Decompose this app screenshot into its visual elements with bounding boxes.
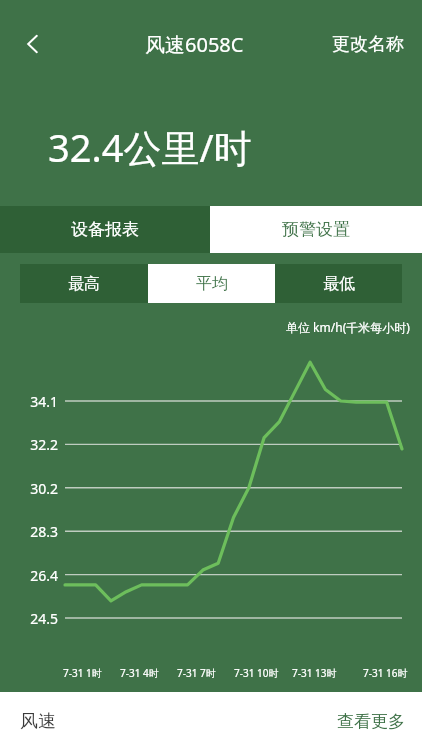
staticText: 7-31 7时 xyxy=(177,666,216,680)
staticText: 32.4公里/时 xyxy=(48,121,252,173)
staticText: 28.3 xyxy=(0,522,58,541)
staticText: 7-31 16时 xyxy=(363,666,408,680)
button[interactable]: 预警设置 xyxy=(210,206,422,253)
staticText: 7-31 10时 xyxy=(234,666,279,680)
staticText: 34.1 xyxy=(0,392,58,411)
button[interactable]: 最高 xyxy=(20,264,148,303)
staticText: 风速6058C xyxy=(145,31,244,58)
button[interactable]: 查看更多 xyxy=(320,701,422,742)
button[interactable]: 更改名称 xyxy=(326,25,410,64)
staticText: 7-31 4时 xyxy=(120,666,159,680)
button[interactable]: 平均 xyxy=(148,264,275,303)
staticText: 更改名称 xyxy=(332,33,404,56)
staticText: 7-31 13时 xyxy=(292,666,337,680)
staticText: 30.2 xyxy=(0,479,58,498)
staticText: 7-31 1时 xyxy=(63,666,102,680)
staticText: 26.4 xyxy=(0,566,58,585)
staticText: 最低 xyxy=(323,274,355,294)
button[interactable]: 设备报表 xyxy=(0,206,210,253)
staticText: 设备报表 xyxy=(71,219,139,240)
staticText: 最高 xyxy=(68,274,100,294)
staticText: 预警设置 xyxy=(282,219,350,240)
staticText: 32.2 xyxy=(0,435,58,454)
button[interactable]: 最低 xyxy=(275,264,402,303)
button[interactable]: Back xyxy=(10,21,56,67)
staticText: 风速 xyxy=(20,710,56,733)
staticText: 单位 km/h(千米每小时) xyxy=(286,319,410,335)
staticText: 平均 xyxy=(196,274,228,294)
staticText: 24.5 xyxy=(0,609,58,628)
staticText: 查看更多 xyxy=(337,711,405,732)
